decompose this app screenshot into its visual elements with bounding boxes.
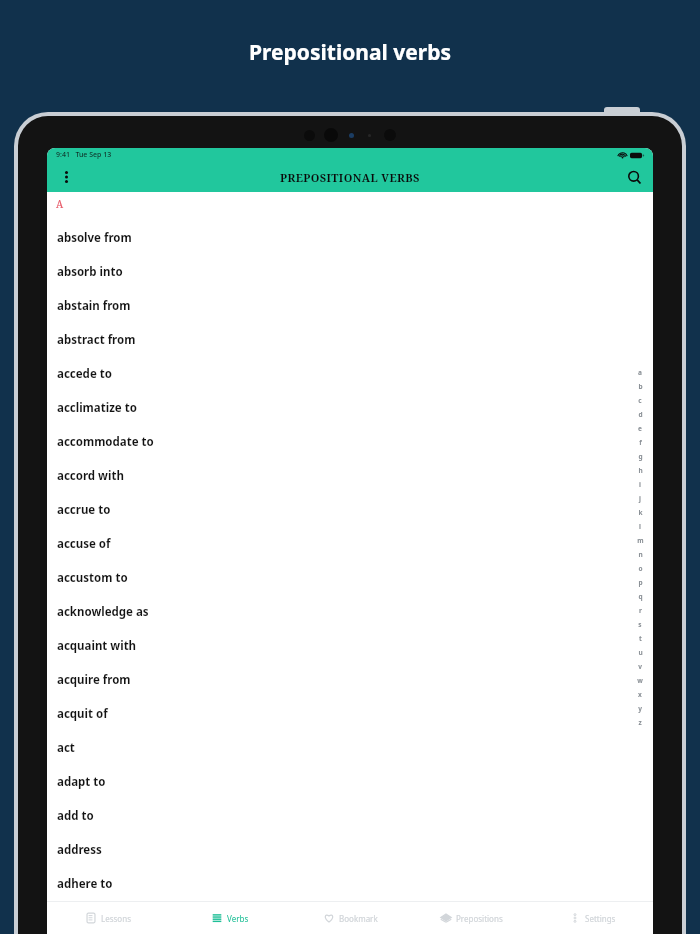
staticText: s [638, 620, 642, 629]
staticText: x [638, 690, 642, 699]
staticText: accuse of [57, 536, 111, 552]
staticText: adapt to [57, 774, 106, 790]
staticText: absolve from [57, 230, 132, 246]
staticText: A [56, 197, 64, 211]
button[interactable]: acquit of [47, 697, 653, 731]
staticText: adhere to [57, 876, 113, 892]
button[interactable]: accrue to [47, 493, 653, 527]
staticText: y [638, 704, 642, 713]
staticText: absorb into [57, 264, 123, 280]
staticText: acknowledge as [57, 604, 149, 620]
staticText: accommodate to [57, 434, 154, 450]
button[interactable]: Alphabet index [634, 365, 646, 729]
staticText: h [638, 466, 643, 475]
staticText: c [638, 396, 642, 405]
staticText: o [638, 564, 643, 573]
staticText: Prepositional verbs [249, 38, 451, 67]
button[interactable]: acclimatize to [47, 391, 653, 425]
staticText: p [638, 578, 643, 587]
staticText: accede to [57, 366, 112, 382]
staticText: acquaint with [57, 638, 137, 654]
button[interactable]: acquire from [47, 663, 653, 697]
button[interactable]: absolve from [47, 221, 653, 255]
button[interactable]: act [47, 731, 653, 765]
staticText: q [638, 592, 643, 601]
staticText: 9:41 Tue Sep 13 [56, 150, 112, 160]
staticText: j [639, 494, 641, 503]
staticText: v [638, 662, 642, 671]
staticText: Settings [585, 913, 616, 924]
staticText: k [638, 508, 643, 517]
staticText: add to [57, 808, 94, 824]
staticText: act [57, 740, 75, 756]
button[interactable]: accommodate to [47, 425, 653, 459]
staticText: b [638, 382, 643, 391]
staticText: l [639, 522, 641, 531]
staticText: acquit of [57, 706, 108, 722]
button[interactable]: Prepositions [411, 902, 532, 934]
button[interactable]: More options [47, 162, 85, 192]
button[interactable]: Bookmark [290, 902, 411, 934]
staticText: u [638, 648, 643, 657]
staticText: z [638, 718, 642, 727]
button[interactable]: acquaint with [47, 629, 653, 663]
button[interactable]: adhere to [47, 867, 653, 901]
button[interactable]: accord with [47, 459, 653, 493]
button[interactable]: Verbs [169, 902, 290, 934]
staticText: g [638, 452, 643, 461]
button[interactable]: accustom to [47, 561, 653, 595]
staticText: PREPOSITIONAL VERBS [280, 170, 420, 185]
staticText: abstract from [57, 332, 136, 348]
staticText: a [638, 368, 642, 377]
staticText: Verbs [227, 913, 249, 924]
button[interactable]: accede to [47, 357, 653, 391]
button[interactable]: Settings [532, 902, 653, 934]
staticText: r [639, 606, 642, 615]
staticText: Lessons [101, 913, 131, 924]
staticText: accustom to [57, 570, 128, 586]
staticText: Bookmark [339, 913, 378, 924]
button[interactable]: address [47, 833, 653, 867]
staticText: m [637, 536, 644, 545]
staticText: acquire from [57, 672, 131, 688]
staticText: accord with [57, 468, 124, 484]
button[interactable]: Search [615, 162, 653, 192]
staticText: Prepositions [456, 913, 503, 924]
staticText: i [639, 480, 641, 489]
staticText: acclimatize to [57, 400, 137, 416]
staticText: f [639, 438, 642, 447]
staticText: d [638, 410, 643, 419]
staticText: accrue to [57, 502, 111, 518]
staticText: t [639, 634, 642, 643]
staticText: abstain from [57, 298, 131, 314]
staticText: address [57, 842, 102, 858]
button[interactable]: adapt to [47, 765, 653, 799]
button[interactable]: abstain from [47, 289, 653, 323]
staticText: n [638, 550, 643, 559]
button[interactable]: absorb into [47, 255, 653, 289]
button[interactable]: abstract from [47, 323, 653, 357]
staticText: w [637, 676, 643, 685]
button[interactable]: Lessons [47, 902, 169, 934]
button[interactable]: acknowledge as [47, 595, 653, 629]
button[interactable]: add to [47, 799, 653, 833]
button[interactable]: accuse of [47, 527, 653, 561]
staticText: e [638, 424, 642, 433]
